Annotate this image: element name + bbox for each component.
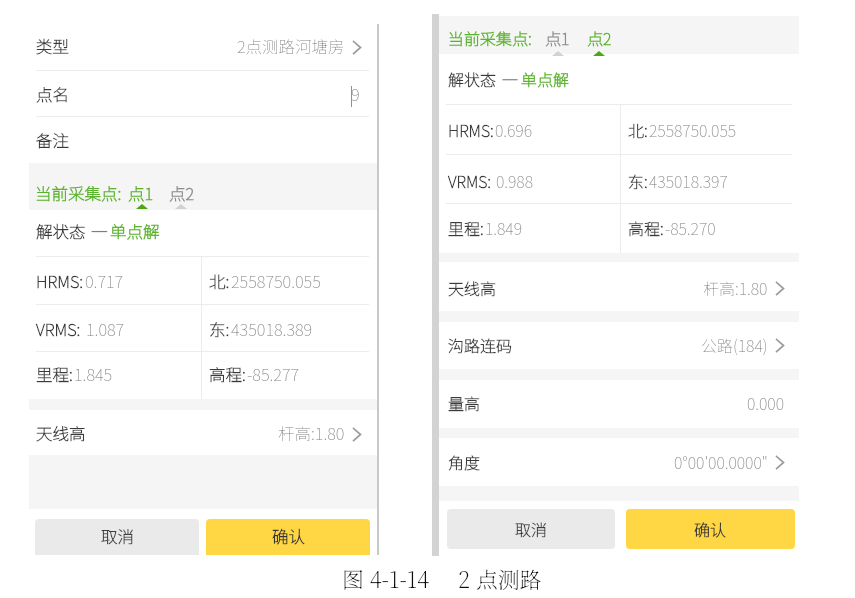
staticText: 东: <box>209 317 230 341</box>
staticText: 1.849 <box>485 216 523 239</box>
staticText: 杆高:1.80 <box>703 276 768 299</box>
staticText: 确认 <box>272 524 305 548</box>
staticText: 0.000 <box>747 391 785 414</box>
button[interactable]: 解状态 <box>36 219 160 243</box>
button[interactable]: 取消 <box>35 519 199 555</box>
staticText: 里程: <box>36 362 73 386</box>
staticText: 2点测路河塘房 <box>237 34 345 58</box>
staticText: 备注 <box>36 128 69 152</box>
staticText: 北: <box>628 118 648 141</box>
button[interactable] <box>439 322 799 370</box>
staticText: 0°00'00.0000" <box>674 450 768 473</box>
staticText: 东: <box>628 169 648 192</box>
staticText: 点名 <box>36 82 69 106</box>
staticText: 天线高 <box>448 276 497 299</box>
staticText: 确认 <box>694 517 727 540</box>
staticText: 435018.397 <box>649 169 728 192</box>
button[interactable]: 点1 <box>128 181 154 205</box>
staticText: 公路(184) <box>701 333 768 356</box>
button[interactable] <box>29 70 377 117</box>
button[interactable] <box>29 116 377 162</box>
button[interactable]: 确认 <box>626 509 795 549</box>
staticText: 北: <box>209 269 230 293</box>
staticText: 点1 <box>128 181 154 205</box>
staticText: 点1 <box>545 26 570 49</box>
button[interactable]: 点2 <box>169 181 195 205</box>
staticText: 0.696 <box>495 118 533 141</box>
staticText: 一 <box>502 67 519 90</box>
staticText: 解状态 <box>36 219 86 243</box>
button[interactable] <box>439 380 799 428</box>
staticText: HRMS: <box>448 118 494 141</box>
staticText: -85.277 <box>247 362 300 386</box>
staticText: 高程: <box>628 216 664 239</box>
staticText: 点2 <box>587 26 612 49</box>
staticText: 0.988 <box>496 169 534 192</box>
staticText: 2 点测路 <box>458 563 542 595</box>
staticText: VRMS: <box>36 317 85 341</box>
staticText: 取消 <box>101 524 134 548</box>
staticText: 量高 <box>448 391 481 414</box>
button[interactable] <box>439 438 799 486</box>
button[interactable]: 取消 <box>447 509 615 549</box>
staticText: 天线高 <box>36 421 86 445</box>
staticText: 取消 <box>515 517 548 540</box>
button[interactable]: 点2 <box>587 26 612 49</box>
button[interactable]: 点1 <box>545 26 570 49</box>
staticText: 当前采集点: <box>35 181 122 205</box>
staticText: 1.845 <box>74 362 113 386</box>
button[interactable] <box>29 24 377 70</box>
staticText: 2558750.055 <box>231 269 321 293</box>
staticText: 沟路连码 <box>448 333 513 356</box>
staticText: VRMS: <box>448 169 495 192</box>
button[interactable]: 解状态 <box>448 67 570 90</box>
staticText: 当前采集点: <box>448 26 532 49</box>
staticText: 角度 <box>448 450 481 473</box>
staticText: 9 <box>351 82 360 106</box>
staticText: 杆高:1.80 <box>278 421 345 445</box>
staticText: 里程: <box>448 216 484 239</box>
staticText: 单点解 <box>521 67 570 90</box>
staticText: 单点解 <box>110 219 160 243</box>
staticText: -85.270 <box>665 216 716 239</box>
button[interactable] <box>29 410 377 455</box>
button[interactable] <box>439 262 799 311</box>
staticText: HRMS: <box>36 269 84 293</box>
staticText: 2558750.055 <box>649 118 737 141</box>
staticText: 点2 <box>169 181 195 205</box>
staticText: 一 <box>91 219 108 243</box>
staticText: 解状态 <box>448 67 497 90</box>
staticText: 高程: <box>209 362 246 386</box>
staticText: 435018.389 <box>231 317 313 341</box>
staticText: 类型 <box>36 34 69 58</box>
staticText: 0.717 <box>85 269 124 293</box>
staticText: 图 4-1-14 <box>342 563 430 595</box>
staticText: 1.087 <box>86 317 125 341</box>
button[interactable]: 确认 <box>206 519 370 555</box>
